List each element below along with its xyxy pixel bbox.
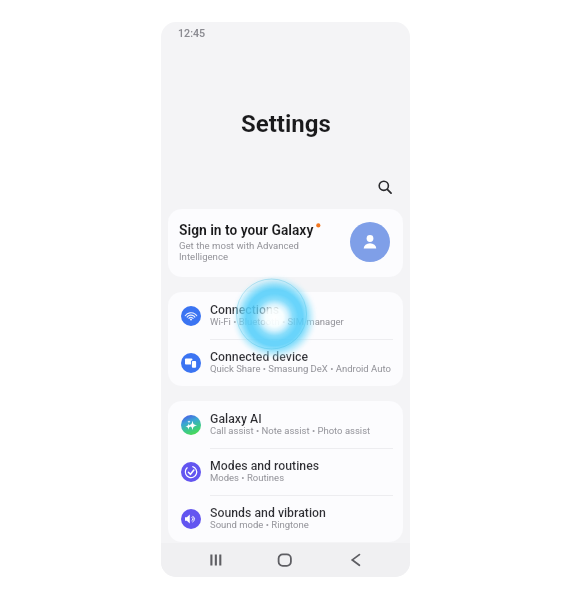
button[interactable]: Connections (168, 292, 403, 339)
staticText: Settings (241, 110, 331, 138)
staticText: Sounds and vibration (210, 506, 326, 520)
button[interactable]: Galaxy AI (168, 401, 403, 448)
staticText: Modes • Routines (210, 472, 285, 483)
staticText: Connections (210, 303, 280, 317)
button[interactable]: Sign in to your Galaxy (168, 209, 403, 277)
staticText: Galaxy AI (210, 412, 262, 426)
button[interactable]: Home (274, 549, 296, 571)
staticText: Sign in to your Galaxy (179, 222, 314, 238)
staticText: Quick Share • Smasung DeX • Android Auto (210, 363, 391, 374)
button[interactable]: Recent apps (205, 549, 227, 571)
button[interactable]: Connected device (168, 339, 403, 386)
staticText: Get the most with Advanced Intelligence (179, 240, 300, 262)
staticText: Modes and routines (210, 459, 320, 473)
staticText: Wi-Fi • Bluetooth • SIM manager (210, 316, 344, 327)
staticText: Connected device (210, 350, 309, 364)
button[interactable]: Search (370, 172, 400, 202)
staticText: Call assist • Note assist • Photo assist (210, 425, 371, 436)
button[interactable]: Back (345, 549, 367, 571)
button[interactable]: Sounds and vibration (168, 495, 403, 542)
staticText: Sound mode • Ringtone (210, 519, 309, 530)
staticText: 12:45 (178, 27, 206, 40)
button[interactable]: Modes and routines (168, 448, 403, 495)
